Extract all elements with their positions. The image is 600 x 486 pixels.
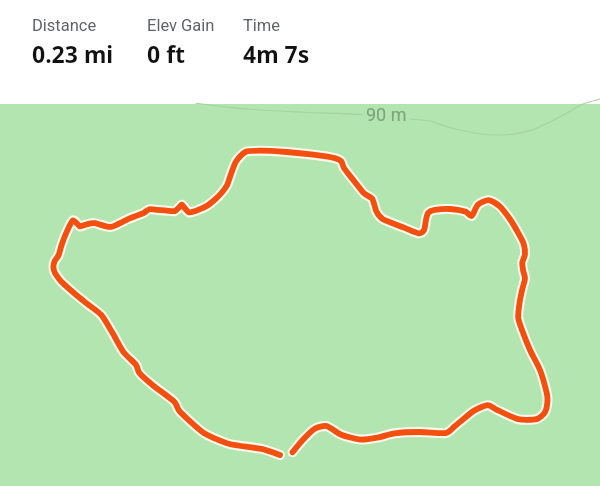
staticText: 0.23 mi <box>32 38 114 69</box>
staticText: Time <box>243 16 281 35</box>
staticText: 4m 7s <box>243 38 310 69</box>
staticText: Distance <box>32 16 97 35</box>
staticText: Elev Gain <box>147 16 215 35</box>
staticText: 90 m <box>366 104 407 125</box>
staticText: 0 ft <box>147 38 186 69</box>
